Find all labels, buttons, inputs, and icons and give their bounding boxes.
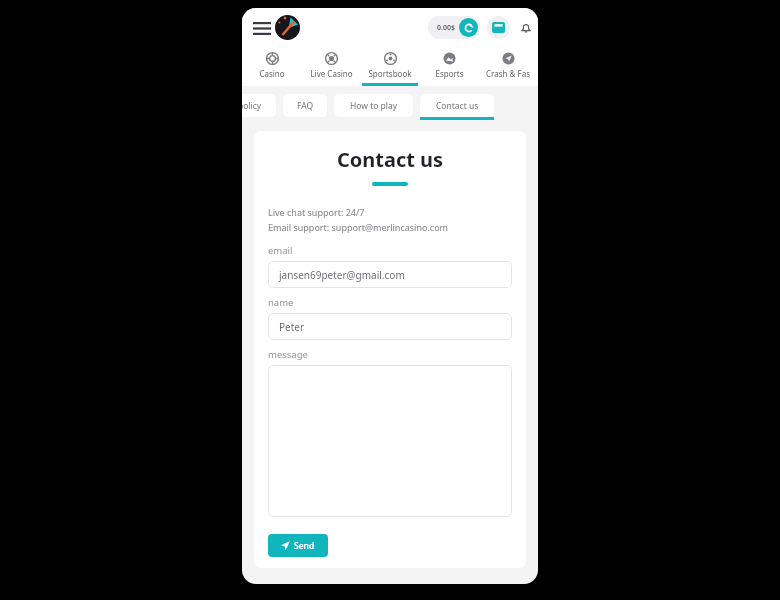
staticText: FAQ	[297, 100, 314, 112]
staticText: Contact us	[436, 100, 479, 112]
button[interactable]	[268, 365, 512, 517]
button[interactable]: How to play	[334, 94, 413, 117]
button[interactable]: Crash & Fas	[480, 48, 536, 86]
staticText: Esports	[435, 68, 464, 79]
button[interactable]: jansen69peter@gmail.com	[268, 261, 512, 288]
button[interactable]: Menu	[250, 16, 274, 40]
button[interactable]: Wallet	[487, 16, 510, 39]
staticText: Sportsbook	[368, 68, 412, 79]
button[interactable]: FAQ	[283, 94, 327, 117]
staticText: message	[268, 348, 308, 361]
button[interactable]: 0.00$	[428, 16, 480, 39]
staticText: Send	[294, 540, 315, 552]
staticText: Casino	[259, 68, 285, 79]
button[interactable]: Sportsbook	[362, 48, 418, 86]
button[interactable]: Casino	[244, 48, 300, 86]
staticText: 0.00$	[437, 23, 455, 33]
button[interactable]: Esports	[421, 48, 477, 86]
staticText: Live chat support: 24/7	[268, 206, 365, 218]
button[interactable]: Live Casino	[303, 48, 359, 86]
staticText: Peter	[279, 320, 305, 334]
button[interactable]: policy	[242, 94, 276, 117]
staticText: Contact us	[254, 146, 526, 173]
staticText: name	[268, 296, 294, 309]
button[interactable]: Notifications	[514, 16, 537, 39]
button[interactable]: Profile	[275, 15, 300, 40]
staticText: email	[268, 244, 293, 257]
staticText: Email support: support@merlincasino.com	[268, 221, 449, 233]
staticText: Crash & Fas	[486, 68, 530, 79]
staticText: How to play	[350, 100, 398, 112]
button[interactable]: Send	[268, 534, 328, 557]
staticText: Live Casino	[310, 68, 353, 79]
button[interactable]: Contact us	[420, 94, 494, 120]
staticText: policy	[242, 100, 262, 112]
staticText: jansen69peter@gmail.com	[279, 268, 405, 282]
button[interactable]: Peter	[268, 313, 512, 340]
